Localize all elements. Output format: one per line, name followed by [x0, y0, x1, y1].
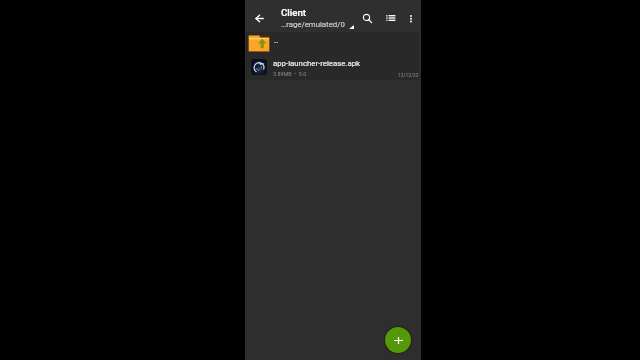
button[interactable]: app-launcher-release.apk — [245, 56, 419, 80]
staticText: app-launcher-release.apk — [273, 59, 360, 68]
button[interactable]: Navigate up — [247, 5, 273, 31]
staticText: .. — [274, 35, 279, 45]
button[interactable]: Change view — [379, 6, 403, 30]
staticText: …rage/emulated/0 — [281, 20, 345, 29]
button[interactable]: Add — [384, 326, 412, 354]
staticText: 12/12/22 — [398, 72, 419, 78]
staticText: Client — [281, 7, 307, 18]
staticText: 3.89MB • 5.0 — [273, 71, 307, 77]
button[interactable]: .. — [245, 32, 419, 56]
button[interactable]: Client — [279, 0, 357, 32]
button[interactable]: More options — [399, 6, 423, 30]
button[interactable]: Search — [355, 6, 379, 30]
